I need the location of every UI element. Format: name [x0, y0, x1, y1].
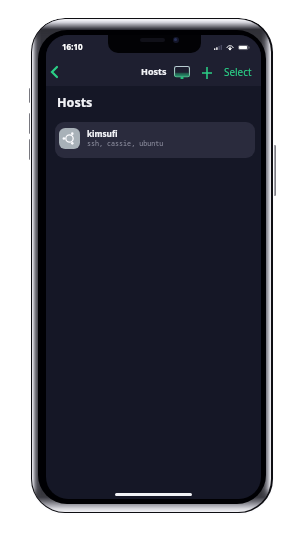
staticText: Hosts — [57, 94, 93, 111]
button[interactable]: Add host — [198, 63, 216, 83]
button[interactable]: Select — [221, 61, 255, 82]
button[interactable]: Back — [46, 59, 64, 85]
staticText: 16:10 — [62, 41, 83, 52]
staticText: Select — [224, 65, 252, 78]
button[interactable]: Terminal display — [171, 62, 193, 82]
button[interactable]: kimsufi — [55, 122, 255, 158]
staticText: Hosts — [141, 65, 167, 77]
staticText: kimsufi — [87, 128, 118, 139]
staticText: ssh, cassie, ubuntu — [87, 139, 164, 148]
